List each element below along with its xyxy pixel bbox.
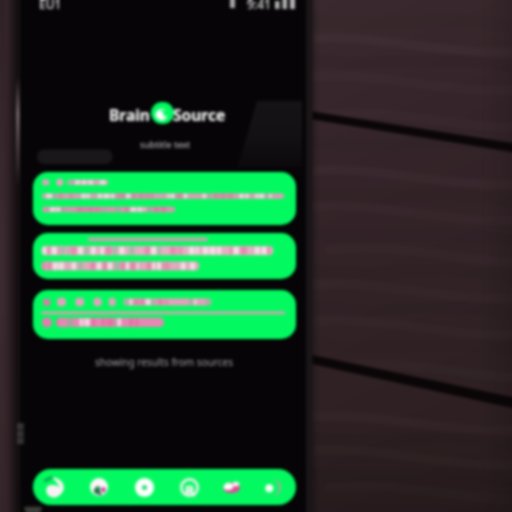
- button[interactable]: Notifications: [175, 473, 203, 501]
- button[interactable]: [33, 290, 296, 339]
- button[interactable]: [33, 172, 296, 225]
- button[interactable]: Explore: [85, 473, 113, 501]
- button[interactable]: Home: [42, 473, 70, 501]
- button[interactable]: [33, 233, 296, 279]
- staticText: 9:41: [247, 0, 271, 12]
- button[interactable]: Library: [217, 473, 245, 501]
- button[interactable]: Record: [130, 473, 158, 501]
- staticText: Source: [173, 104, 226, 125]
- staticText: EU1: [39, 0, 62, 12]
- staticText: subtitle text: [140, 138, 191, 150]
- button[interactable]: Profile: [259, 473, 287, 501]
- staticText: Brain: [109, 104, 150, 125]
- staticText: showing results from sources: [95, 355, 233, 369]
